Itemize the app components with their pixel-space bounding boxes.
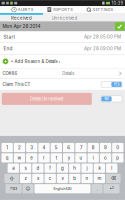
- button[interactable]: 2: [14, 143, 25, 152]
- button[interactable]: CO#86: [0, 68, 125, 78]
- staticText: 7: [80, 145, 82, 150]
- button[interactable]: REPORTS: [45, 6, 75, 13]
- staticText: 10:39: [111, 0, 123, 6]
- button[interactable]: Toggle: [101, 95, 122, 103]
- button[interactable]: f: [45, 164, 56, 173]
- staticText: j: [87, 165, 88, 171]
- button[interactable]: Toggle: [101, 80, 122, 88]
- staticText: y: [68, 155, 70, 160]
- staticText: s: [25, 165, 27, 171]
- button[interactable]: 6: [63, 143, 74, 152]
- staticText: h: [73, 165, 76, 171]
- button[interactable]: ?123: [5, 184, 21, 193]
- button[interactable]: ⇧: [4, 174, 19, 183]
- button[interactable]: 9: [100, 143, 111, 152]
- button[interactable]: 5: [51, 143, 62, 152]
- button[interactable]: t: [51, 153, 62, 162]
- staticText: r: [43, 155, 45, 160]
- button[interactable]: v: [57, 174, 68, 183]
- button[interactable]: ⏎: [103, 184, 119, 193]
- button[interactable]: c: [44, 174, 56, 183]
- staticText: g: [61, 165, 64, 171]
- button[interactable]: End: [0, 43, 125, 54]
- button[interactable]: b: [69, 174, 80, 183]
- staticText: SETTINGS: [92, 7, 113, 12]
- button[interactable]: ☺: [22, 184, 33, 193]
- button[interactable]: p: [112, 153, 123, 162]
- button[interactable]: i: [88, 153, 99, 162]
- staticText: 8: [92, 145, 95, 150]
- staticText: 1: [6, 145, 8, 150]
- staticText: Unreceived: [51, 15, 77, 21]
- staticText: u: [79, 155, 82, 160]
- button[interactable]: q: [1, 153, 13, 162]
- button[interactable]: Unreceived: [43, 15, 86, 21]
- button[interactable]: u: [75, 153, 87, 162]
- button[interactable]: 4: [38, 143, 50, 152]
- button[interactable]: n: [81, 174, 93, 183]
- staticText: .: [96, 186, 97, 191]
- staticText: ⇧: [9, 175, 14, 181]
- staticText: l: [111, 165, 112, 171]
- staticText: 9: [104, 145, 107, 150]
- staticText: o: [104, 155, 107, 160]
- button[interactable]: o: [100, 153, 111, 162]
- button[interactable]: .: [91, 184, 102, 193]
- staticText: YES: [113, 82, 119, 86]
- staticText: i: [93, 155, 94, 160]
- staticText: Details: [62, 71, 74, 76]
- staticText: b: [73, 176, 76, 181]
- button[interactable]: 7: [75, 143, 87, 152]
- staticText: q: [6, 155, 9, 160]
- button[interactable]: a: [8, 164, 19, 173]
- staticText: 5: [55, 145, 58, 150]
- staticText: 6: [67, 145, 70, 150]
- button[interactable]: English(US): [34, 184, 90, 193]
- button[interactable]: SETTINGS: [85, 6, 115, 13]
- button[interactable]: Received: [0, 15, 43, 21]
- button[interactable]: m: [94, 174, 105, 183]
- button[interactable]: Delete Unreceived: [2, 93, 92, 105]
- staticText: ?123: [10, 187, 17, 191]
- staticText: REPORTS: [53, 7, 73, 12]
- button[interactable]: Start: [0, 31, 125, 43]
- button[interactable]: 0: [112, 143, 123, 152]
- staticText: x: [37, 176, 39, 181]
- button[interactable]: 1: [1, 143, 13, 152]
- staticText: 2: [18, 145, 21, 150]
- button[interactable]: d: [32, 164, 44, 173]
- button[interactable]: e: [26, 153, 37, 162]
- button[interactable]: + Add Reason & Details ›: [0, 55, 125, 68]
- staticText: e: [30, 155, 33, 160]
- staticText: ☺: [25, 186, 30, 191]
- staticText: + Add Reason & Details ›: [10, 59, 60, 64]
- button[interactable]: l: [106, 164, 117, 173]
- button[interactable]: j: [81, 164, 93, 173]
- staticText: 3: [30, 145, 33, 150]
- staticText: m: [97, 176, 101, 181]
- button[interactable]: y: [63, 153, 74, 162]
- button[interactable]: r: [38, 153, 50, 162]
- button[interactable]: ALERTS: [10, 6, 35, 13]
- staticText: 4: [43, 145, 46, 150]
- staticText: Mon Apr 28 2014: [2, 24, 40, 29]
- button[interactable]: x: [32, 174, 43, 183]
- button[interactable]: w: [14, 153, 25, 162]
- button[interactable]: h: [69, 164, 80, 173]
- button[interactable]: g: [57, 164, 68, 173]
- button[interactable]: k: [94, 164, 105, 173]
- staticText: k: [98, 165, 100, 171]
- button[interactable]: Confirm day: [115, 22, 124, 30]
- staticText: n: [86, 176, 89, 181]
- button[interactable]: ⌫: [106, 174, 120, 183]
- staticText: Apr 28 09:00 PM: [84, 46, 121, 51]
- button[interactable]: 3: [26, 143, 37, 152]
- button[interactable]: z: [20, 174, 31, 183]
- button[interactable]: s: [20, 164, 31, 173]
- staticText: ⌫: [111, 176, 116, 181]
- staticText: w: [17, 155, 21, 160]
- staticText: ⏎: [109, 186, 113, 191]
- staticText: English(US): [53, 187, 71, 191]
- staticText: a: [12, 165, 14, 171]
- button[interactable]: 8: [88, 143, 99, 152]
